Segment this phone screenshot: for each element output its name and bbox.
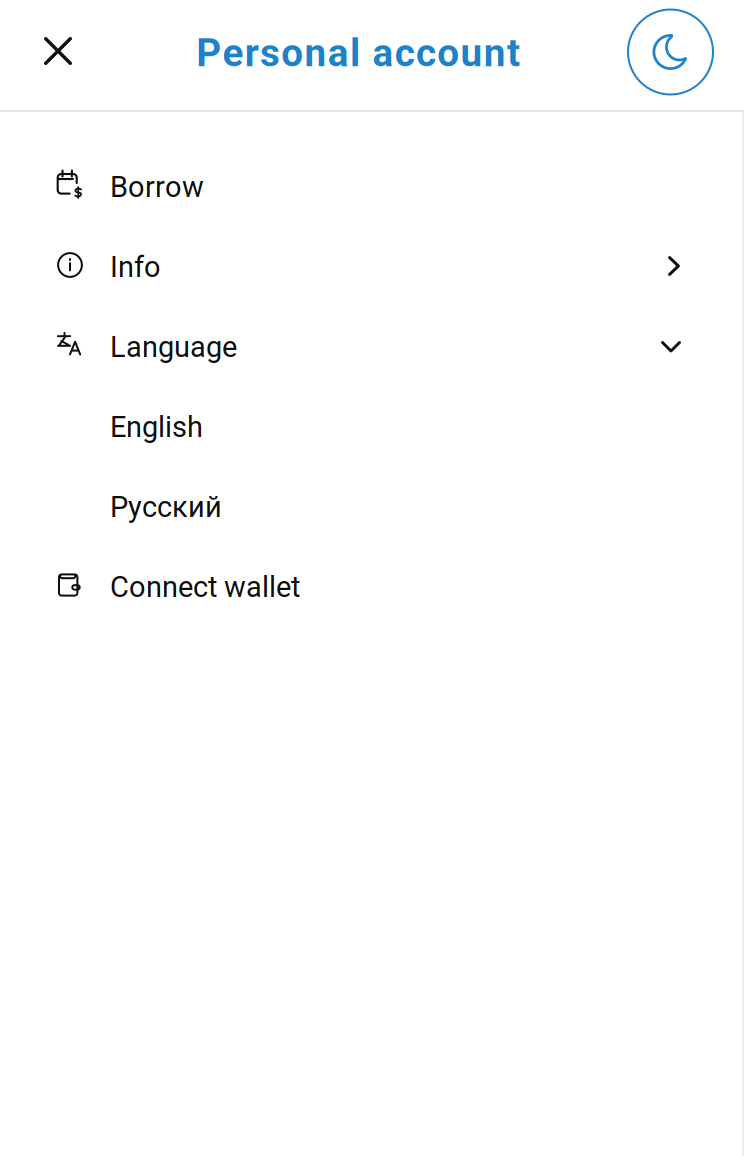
staticText: Info <box>110 250 161 284</box>
staticText: Personal account <box>196 30 520 76</box>
staticText: Русский <box>110 490 222 524</box>
button[interactable]: Русский <box>0 467 744 547</box>
button[interactable]: Info <box>0 227 744 307</box>
button[interactable]: Language <box>0 307 744 387</box>
staticText: English <box>110 410 203 444</box>
button[interactable]: English <box>0 387 744 467</box>
staticText: Language <box>110 330 237 364</box>
button[interactable]: Connect wallet <box>0 547 744 627</box>
button[interactable]: Borrow <box>0 147 744 227</box>
button[interactable]: Close <box>28 21 88 81</box>
button[interactable]: Toggle dark mode <box>628 8 713 93</box>
staticText: Connect wallet <box>110 570 300 604</box>
staticText: Borrow <box>110 170 204 204</box>
